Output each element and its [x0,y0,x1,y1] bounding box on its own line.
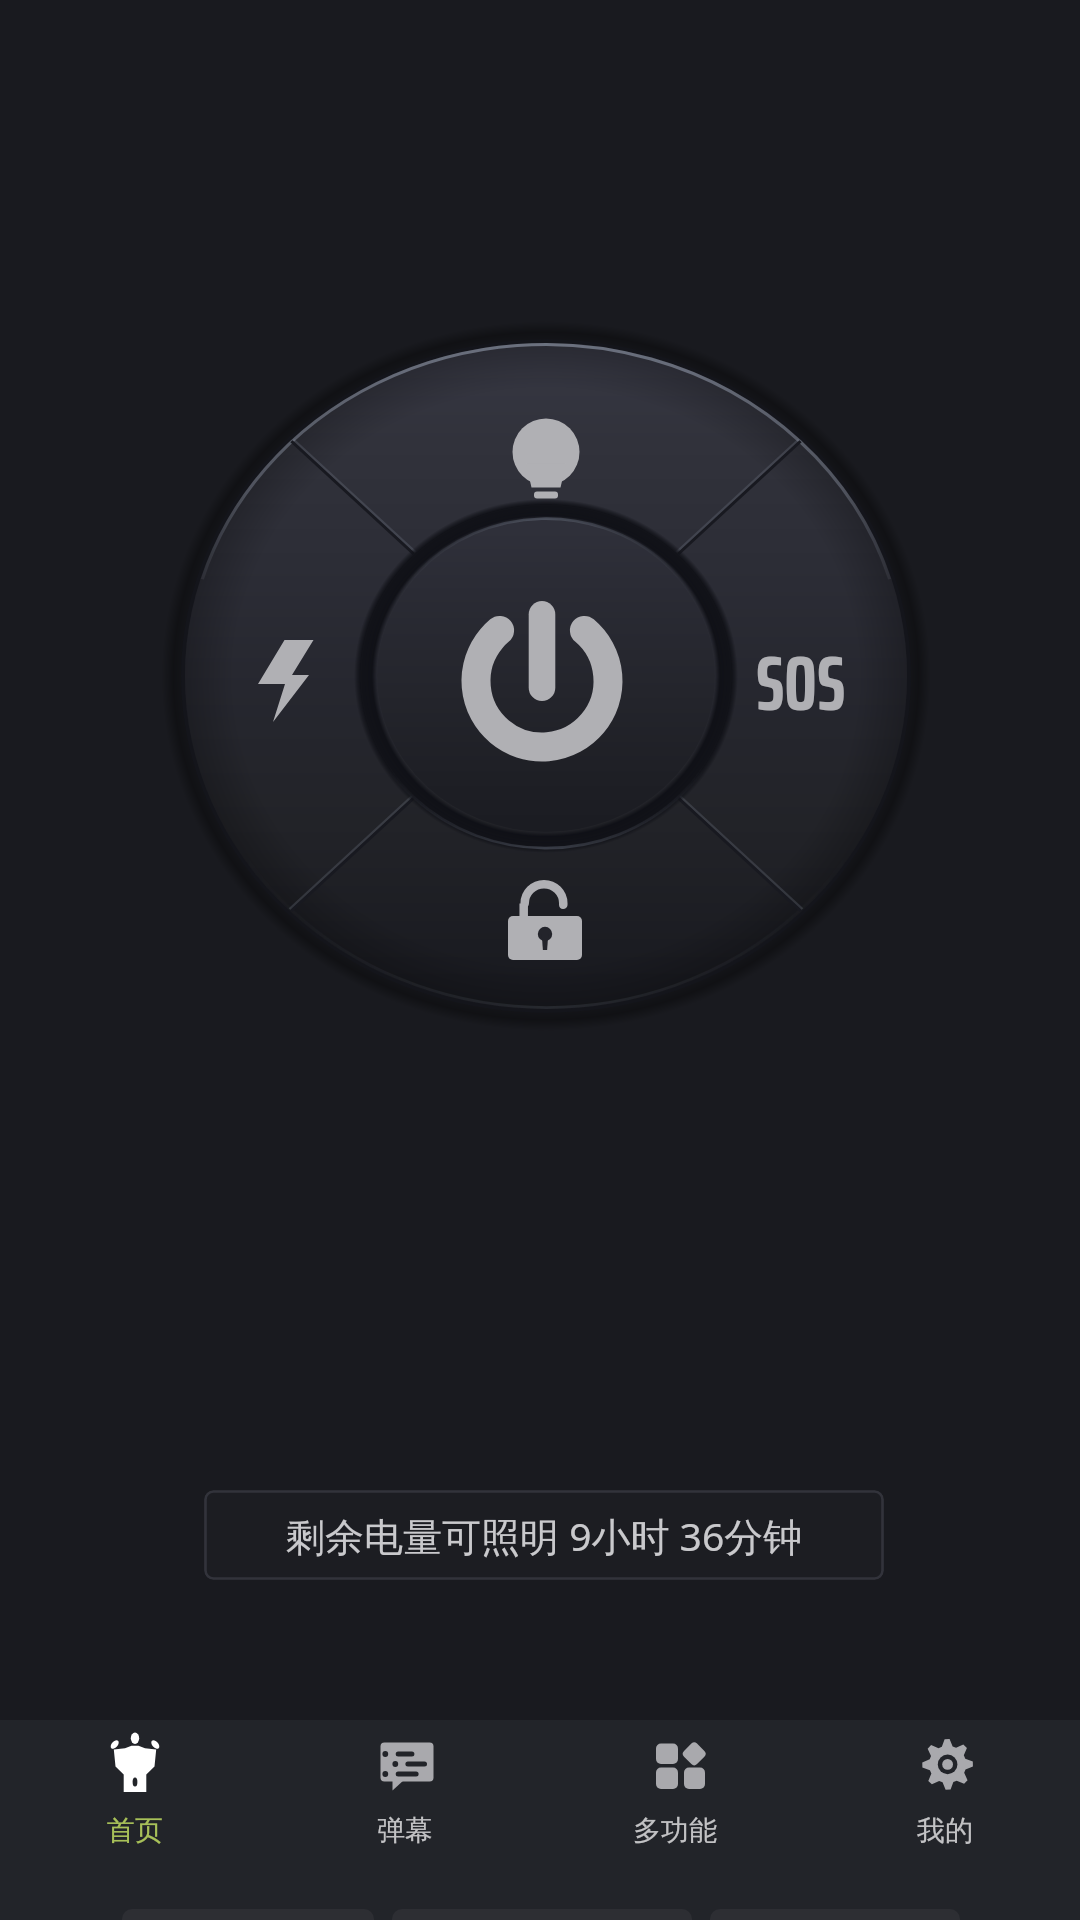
button[interactable]: 我的 [810,1720,1080,1920]
staticText: 我的 [917,1813,973,1848]
staticText: 多功能 [633,1813,717,1848]
staticText: SOS [756,623,846,744]
button[interactable]: 首页 [0,1720,270,1920]
staticText: 弹幕 [377,1813,433,1848]
button[interactable]: Strobe [198,586,364,768]
staticText: 首页 [107,1813,163,1848]
button[interactable]: Lock [455,866,637,992]
button[interactable]: Power [374,504,718,848]
button[interactable]: 弹幕 [270,1720,540,1920]
staticText: 剩余电量可照明 9小时 36分钟 [286,1509,803,1562]
button[interactable]: 多功能 [540,1720,810,1920]
button[interactable]: Brightness [455,376,637,492]
button[interactable]: 剩余电量可照明 9小时 36分钟 [204,1490,884,1580]
button[interactable]: SOS [718,592,884,774]
